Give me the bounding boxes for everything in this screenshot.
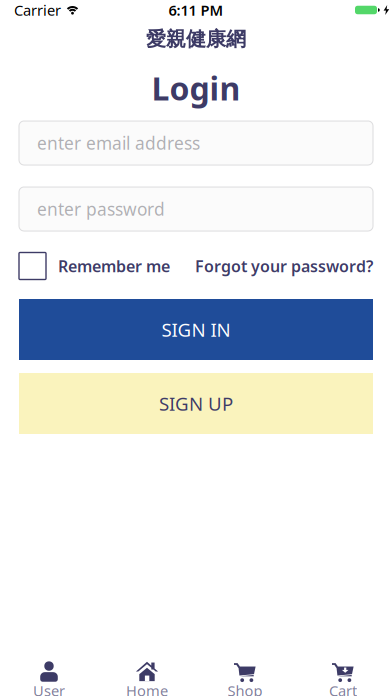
button[interactable]: SIGN IN: [19, 299, 373, 360]
staticText: Shop: [227, 681, 262, 696]
staticText: 6:11 PM: [168, 0, 223, 20]
staticText: 愛親健康網: [146, 27, 246, 51]
staticText: Home: [126, 681, 168, 696]
staticText: SIGN IN: [161, 317, 230, 342]
staticText: enter email address: [37, 131, 200, 154]
button[interactable]: User: [0, 647, 98, 696]
staticText: Carrier: [14, 0, 61, 20]
button[interactable]: SIGN UP: [19, 373, 373, 434]
button[interactable]: Shop: [196, 647, 294, 696]
staticText: enter password: [37, 197, 165, 220]
button[interactable]: enter email address: [19, 121, 373, 165]
button[interactable]: Remember me: [19, 252, 170, 279]
staticText: SIGN UP: [159, 391, 233, 416]
staticText: Remember me: [58, 255, 170, 277]
button[interactable]: Forgot your password?: [195, 255, 373, 277]
button[interactable]: enter password: [19, 187, 373, 231]
staticText: Cart: [329, 681, 357, 696]
button[interactable]: Cart: [294, 647, 392, 696]
staticText: Forgot your password?: [195, 255, 373, 277]
staticText: Login: [151, 67, 240, 109]
button[interactable]: Home: [98, 647, 196, 696]
staticText: User: [33, 681, 65, 696]
